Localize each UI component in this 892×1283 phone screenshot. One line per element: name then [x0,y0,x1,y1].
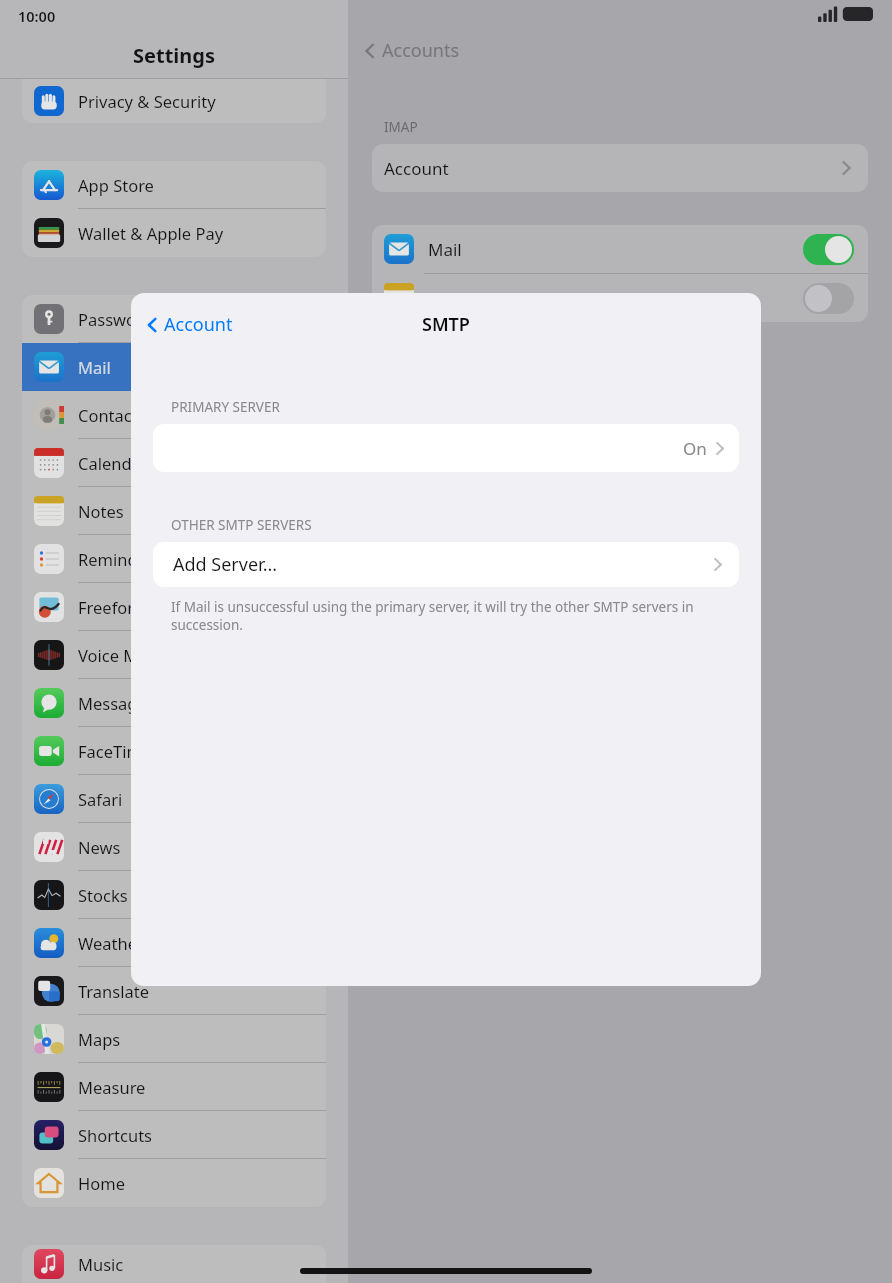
button[interactable]: Safari [22,775,326,823]
staticText: FaceTime [78,740,152,762]
staticText: Contacts [78,404,146,426]
button[interactable]: Stocks [22,871,326,919]
staticText: Privacy & Security [78,90,216,112]
button[interactable]: Mail [372,225,868,273]
button[interactable]: Privacy & Security [22,79,326,123]
staticText: Maps [78,1028,121,1050]
staticText: Settings [133,42,215,69]
staticText: Freeform [78,596,150,618]
button[interactable]: Mail [22,343,326,391]
button[interactable]: Weather [22,919,326,967]
staticText: Translate [78,980,149,1002]
button[interactable]: Reminders [22,535,326,583]
button[interactable]: Maps [22,1015,326,1063]
staticText: News [78,836,121,858]
button[interactable]: Shortcuts [22,1111,326,1159]
button[interactable]: Translate [22,967,326,1015]
staticText: Account [384,157,449,180]
staticText: Wallet & Apple Pay [78,222,224,244]
button[interactable]: Notes toggle [803,283,854,314]
staticText: Notes [428,287,476,310]
staticText: IMAP [384,118,418,136]
staticText: On [683,437,707,460]
staticText: Passwords [78,308,161,330]
button[interactable]: Home [22,1159,326,1207]
staticText: If Mail is unsuccessful using the primar… [171,598,723,634]
staticText: Weather [78,932,144,954]
staticText: Calendar [78,452,148,474]
staticText: Stocks [78,884,128,906]
staticText: Notes [78,500,124,522]
staticText: 10:00 [18,6,56,26]
staticText: Mail [428,238,462,261]
button[interactable]: FaceTime [22,727,326,775]
staticText: Home [78,1172,125,1194]
staticText: PRIMARY SERVER [171,398,280,416]
button[interactable]: Messages [22,679,326,727]
staticText: Music [78,1253,124,1275]
staticText: App Store [78,174,154,196]
button[interactable]: News [22,823,326,871]
button[interactable]: Account [372,144,868,192]
staticText: Mail [78,356,111,378]
button[interactable]: Contacts [22,391,326,439]
staticText: SMTP [422,312,470,337]
staticText: Safari [78,788,123,810]
button[interactable]: Notes [372,274,868,322]
button[interactable]: On [153,424,739,472]
staticText: Measure [78,1076,146,1098]
staticText: Accounts [382,38,460,63]
staticText: Shortcuts [78,1124,152,1146]
button[interactable]: Calendar [22,439,326,487]
staticText: Voice Memos [78,644,181,666]
button[interactable]: Accounts [362,38,460,63]
button[interactable]: App Store [22,161,326,209]
button[interactable]: Mail toggle [803,234,854,265]
button[interactable]: Account [145,312,233,337]
button[interactable]: Music [22,1245,326,1283]
staticText: Account [164,312,233,337]
staticText: Reminders [78,548,162,570]
staticText: Add Server... [173,552,278,577]
button[interactable]: Notes [22,487,326,535]
button[interactable]: Add Server... [153,542,739,587]
button[interactable]: Voice Memos [22,631,326,679]
staticText: OTHER SMTP SERVERS [171,516,312,534]
staticText: Messages [78,692,155,714]
button[interactable]: Wallet & Apple Pay [22,209,326,257]
button[interactable]: Measure [22,1063,326,1111]
button[interactable]: Passwords [22,295,326,343]
button[interactable]: Freeform [22,583,326,631]
